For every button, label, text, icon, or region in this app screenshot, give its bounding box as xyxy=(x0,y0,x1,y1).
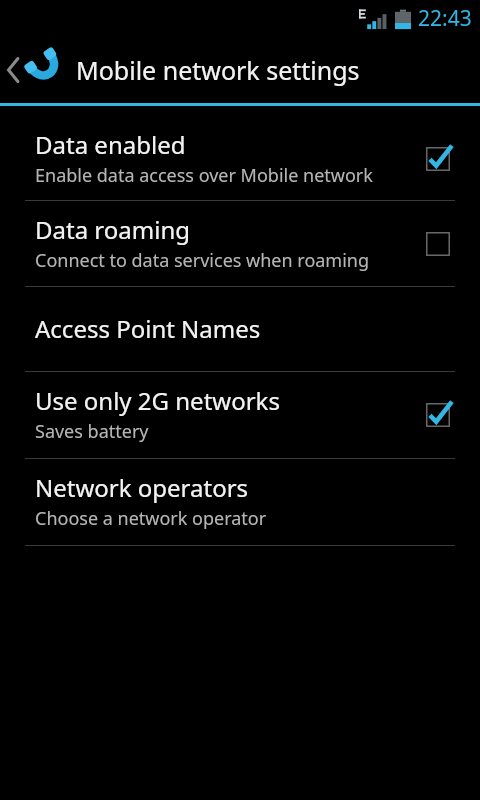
staticText: Choose a network operator xyxy=(35,506,267,531)
button[interactable]: Back to previous screen xyxy=(0,36,480,103)
button[interactable]: Use only 2G networks xyxy=(0,372,480,458)
button[interactable]: Use only 2G networks checked xyxy=(421,398,455,432)
staticText: Data enabled xyxy=(35,128,186,161)
staticText: Enable data access over Mobile network xyxy=(35,163,373,188)
button[interactable]: Network operators xyxy=(0,459,480,545)
button[interactable]: Data enabled xyxy=(0,117,480,200)
staticText: Connect to data services when roaming xyxy=(35,248,370,273)
staticText: Use only 2G networks xyxy=(35,384,280,417)
staticText: Mobile network settings xyxy=(76,53,360,87)
staticText: Saves battery xyxy=(35,419,149,444)
staticText: 22:43 xyxy=(418,4,472,33)
button[interactable]: Data roaming xyxy=(0,201,480,286)
staticText: Network operators xyxy=(35,471,249,504)
button[interactable]: Data roaming unchecked xyxy=(421,227,455,261)
button[interactable]: Data enabled checked xyxy=(421,142,455,176)
button[interactable]: Access Point Names xyxy=(0,287,480,371)
staticText: Access Point Names xyxy=(35,312,261,345)
staticText: Data roaming xyxy=(35,213,190,246)
